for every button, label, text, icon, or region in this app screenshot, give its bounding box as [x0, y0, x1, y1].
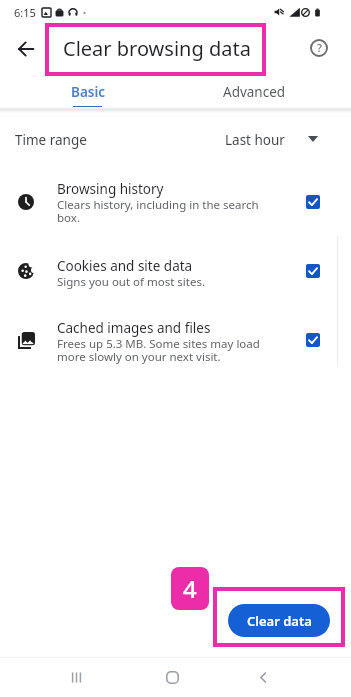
button[interactable]: Help — [301, 30, 337, 66]
button[interactable]: Browsing history — [0, 178, 351, 240]
button[interactable]: Basic — [10, 79, 166, 105]
staticText: Last hour — [225, 131, 285, 149]
staticText: Clear data — [247, 612, 312, 630]
staticText: Advanced — [223, 83, 286, 101]
staticText: Frees up 5.3 MB. Some sites may load mor… — [57, 337, 260, 363]
staticText: ? — [317, 40, 322, 55]
staticText: Clears history, including in the search … — [57, 198, 259, 224]
staticText: Time range — [15, 131, 87, 149]
staticText: 4 — [183, 572, 197, 605]
staticText: Clear browsing data — [63, 35, 251, 62]
button[interactable]: Home — [160, 665, 184, 689]
button[interactable]: Cookies and site data — [0, 255, 351, 303]
button[interactable]: Advanced — [176, 79, 333, 105]
button[interactable]: Clear data — [228, 604, 330, 637]
button[interactable]: Back — [251, 665, 275, 689]
staticText: Browsing history — [57, 179, 164, 198]
staticText: Cookies and site data — [57, 256, 193, 275]
staticText: Basic — [71, 83, 106, 101]
button[interactable]: Time range — [0, 118, 351, 160]
staticText: 6:15 — [14, 5, 36, 20]
button[interactable]: Back — [7, 30, 45, 68]
button[interactable]: Recent apps — [64, 665, 88, 689]
staticText: Cached images and files — [57, 318, 211, 337]
button[interactable]: Cached images and files — [0, 317, 351, 379]
staticText: Signs you out of most sites. — [57, 275, 206, 288]
